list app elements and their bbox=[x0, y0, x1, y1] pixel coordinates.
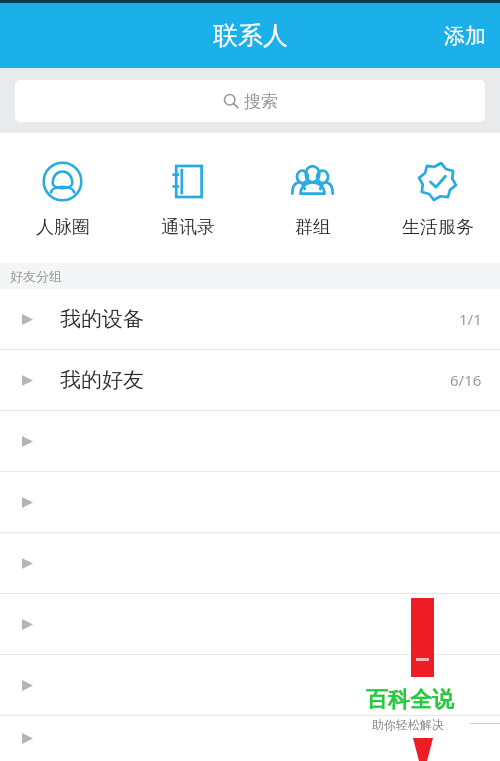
button[interactable] bbox=[0, 411, 500, 471]
staticText: 我的设备 bbox=[60, 306, 144, 332]
button[interactable]: 我的设备 bbox=[0, 289, 500, 349]
staticText: 1/1 bbox=[459, 309, 482, 329]
staticText: 群组 bbox=[295, 216, 331, 239]
staticText: 联系人 bbox=[213, 20, 288, 51]
button[interactable] bbox=[0, 533, 500, 593]
staticText: 我的好友 bbox=[60, 367, 144, 393]
staticText: 搜索 bbox=[244, 91, 278, 112]
staticText: 好友分组 bbox=[10, 268, 62, 284]
button[interactable] bbox=[0, 472, 500, 532]
staticText: 百科全说 bbox=[366, 686, 454, 714]
staticText: 添加 bbox=[444, 23, 486, 49]
button[interactable]: 添加 bbox=[430, 13, 500, 59]
button[interactable]: 搜索 bbox=[15, 80, 485, 122]
button[interactable] bbox=[0, 716, 500, 761]
button[interactable] bbox=[0, 655, 500, 715]
button[interactable]: 通讯录 bbox=[125, 158, 250, 239]
button[interactable]: 生活服务 bbox=[375, 158, 500, 239]
button[interactable]: 我的好友 bbox=[0, 350, 500, 410]
other: 生活服务 bbox=[414, 158, 461, 205]
other: 群组 bbox=[289, 158, 336, 205]
staticText: 通讯录 bbox=[161, 216, 215, 239]
button[interactable]: 群组 bbox=[250, 158, 375, 239]
staticText: 6/16 bbox=[450, 370, 482, 390]
button[interactable]: 人脉圈 bbox=[0, 158, 125, 239]
other: 通讯录 bbox=[164, 158, 211, 205]
staticText: 助你轻松解决 bbox=[372, 717, 444, 732]
button[interactable] bbox=[0, 594, 500, 654]
staticText: 人脉圈 bbox=[36, 216, 90, 239]
other: 人脉圈 bbox=[39, 158, 86, 205]
staticText: 生活服务 bbox=[402, 216, 474, 239]
